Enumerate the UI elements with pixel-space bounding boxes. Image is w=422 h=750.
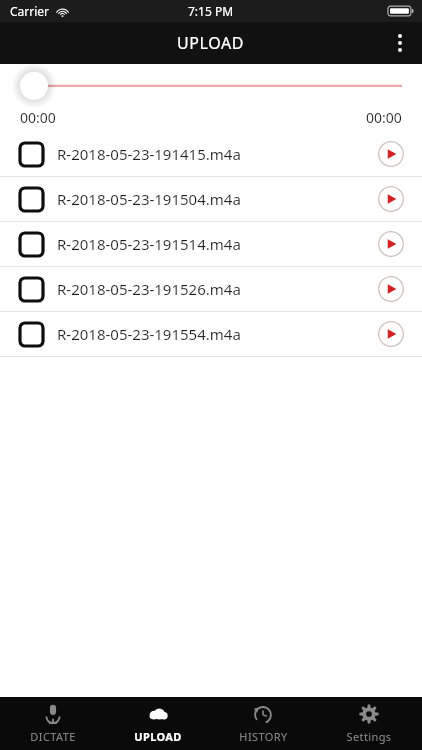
staticText: UPLOAD (134, 729, 182, 744)
button[interactable]: Select R-2018-05-23-191554.m4a (19, 322, 44, 347)
staticText: R-2018-05-23-191514.m4a (57, 234, 371, 254)
button[interactable]: Select R-2018-05-23-191415.m4a (0, 132, 422, 176)
staticText: Settings (346, 729, 392, 744)
button[interactable]: DICTATE (0, 697, 105, 750)
staticText: 00:00 (366, 108, 402, 127)
button[interactable]: Select R-2018-05-23-191504.m4a (0, 177, 422, 221)
button[interactable]: Select R-2018-05-23-191526.m4a (19, 277, 44, 302)
staticText: 00:00 (20, 108, 56, 127)
staticText: Carrier (10, 3, 50, 19)
staticText: R-2018-05-23-191504.m4a (57, 189, 371, 209)
button[interactable]: Playback position (0, 65, 422, 105)
button[interactable]: HISTORY (210, 697, 316, 750)
button[interactable]: Play R-2018-05-23-191514.m4a (371, 224, 411, 264)
button[interactable]: Select R-2018-05-23-191514.m4a (19, 232, 44, 257)
staticText: HISTORY (239, 729, 288, 744)
button[interactable]: Select R-2018-05-23-191504.m4a (19, 187, 44, 212)
button[interactable]: Play R-2018-05-23-191415.m4a (371, 134, 411, 174)
button[interactable]: Select R-2018-05-23-191554.m4a (0, 312, 422, 356)
button[interactable]: Play R-2018-05-23-191554.m4a (371, 314, 411, 354)
button[interactable]: Play R-2018-05-23-191526.m4a (371, 269, 411, 309)
staticText: DICTATE (30, 729, 76, 744)
staticText: 7:15 PM (188, 3, 234, 19)
staticText: R-2018-05-23-191554.m4a (57, 324, 371, 344)
button[interactable]: Select R-2018-05-23-191526.m4a (0, 267, 422, 311)
button[interactable]: UPLOAD (105, 697, 210, 750)
staticText: UPLOAD (177, 32, 245, 54)
staticText: R-2018-05-23-191526.m4a (57, 279, 371, 299)
staticText: R-2018-05-23-191415.m4a (57, 144, 371, 164)
button[interactable]: More options (378, 22, 422, 64)
button[interactable]: Select R-2018-05-23-191415.m4a (19, 142, 44, 167)
button[interactable]: Select R-2018-05-23-191514.m4a (0, 222, 422, 266)
button[interactable]: Play R-2018-05-23-191504.m4a (371, 179, 411, 219)
button[interactable]: Settings (316, 697, 422, 750)
